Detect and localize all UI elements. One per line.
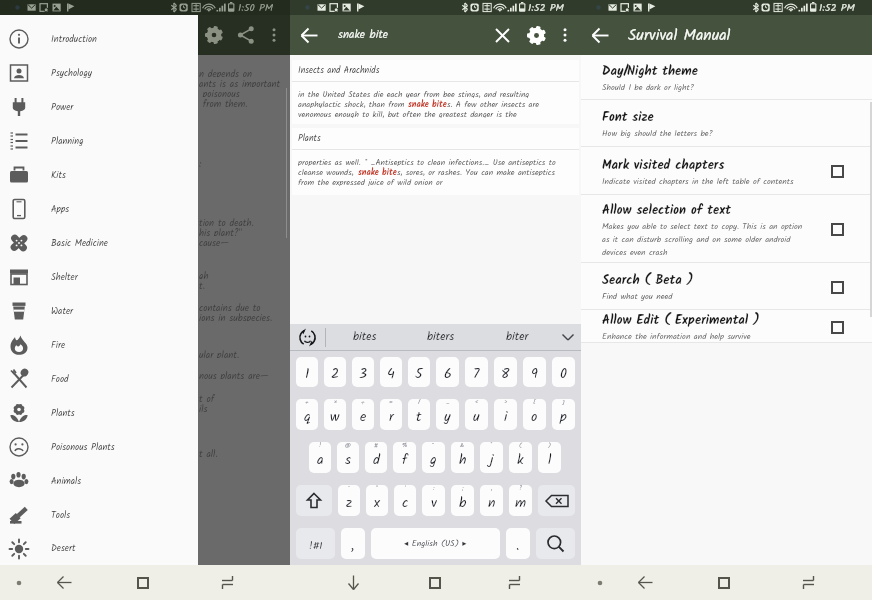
button[interactable]: Clear search: [485, 18, 519, 52]
staticText: q: [304, 406, 311, 428]
staticText: s, sores, or rashes. You can make antise…: [397, 166, 556, 176]
button[interactable]: Menu: [8, 565, 30, 600]
button[interactable]: Day/Night theme: [581, 55, 872, 100]
button[interactable]: Settings: [198, 19, 230, 51]
button[interactable]: Recent apps: [798, 565, 820, 600]
button[interactable]: Search ( Beta ): [581, 263, 872, 310]
button[interactable]: Shelter: [0, 260, 198, 294]
button[interactable]: a: [309, 442, 331, 473]
button[interactable]: Introduction: [0, 22, 198, 56]
button[interactable]: 2: [324, 357, 346, 387]
button[interactable]: Back: [53, 565, 75, 600]
button[interactable]: Back: [581, 16, 619, 54]
button[interactable]: q: [296, 399, 318, 430]
button[interactable]: Allow Edit ( Experimental ): [826, 316, 848, 338]
button[interactable]: Menu: [589, 565, 611, 600]
staticText: d: [373, 449, 380, 471]
button[interactable]: Psychology: [0, 56, 198, 90]
button[interactable]: 9: [523, 357, 546, 387]
button[interactable]: .: [506, 528, 530, 559]
button[interactable]: Search ( Beta ): [826, 276, 848, 298]
button[interactable]: t: [408, 399, 430, 430]
button[interactable]: Tools: [0, 498, 198, 532]
button[interactable]: Recent apps: [504, 565, 526, 600]
button[interactable]: 3: [352, 357, 374, 387]
button[interactable]: Water: [0, 294, 198, 328]
button[interactable]: Allow Edit ( Experimental ): [581, 310, 872, 343]
staticText: e: [360, 406, 367, 428]
button[interactable]: z: [338, 485, 360, 516]
button[interactable]: s: [337, 442, 359, 473]
button[interactable]: Animals: [0, 464, 198, 498]
button[interactable]: h: [451, 442, 474, 473]
button[interactable]: u: [465, 399, 488, 430]
staticText: devices even crash: [602, 246, 668, 259]
button[interactable]: More options: [262, 23, 286, 47]
button[interactable]: n: [480, 485, 503, 516]
button[interactable]: r: [380, 399, 402, 430]
button[interactable]: w: [324, 399, 346, 430]
button[interactable]: d: [365, 442, 387, 473]
button[interactable]: Desert: [0, 532, 198, 565]
button[interactable]: Home: [713, 565, 735, 600]
button[interactable]: ◂ English (US) ▸: [371, 528, 500, 559]
button[interactable]: e: [352, 399, 374, 430]
button[interactable]: biter: [479, 324, 555, 350]
button[interactable]: [538, 485, 575, 516]
button[interactable]: o: [523, 399, 546, 430]
button[interactable]: Share: [230, 19, 262, 51]
button[interactable]: !#1: [296, 528, 335, 559]
button[interactable]: f: [393, 442, 416, 473]
button[interactable]: Mark visited chapters: [826, 160, 848, 182]
button[interactable]: Mark visited chapters: [581, 147, 872, 195]
button[interactable]: More suggestions: [555, 324, 581, 350]
button[interactable]: k: [509, 442, 532, 473]
button[interactable]: Hide keyboard: [342, 565, 364, 600]
button[interactable]: Home: [132, 565, 154, 600]
button[interactable]: g: [422, 442, 445, 473]
staticText: Mark visited chapters: [602, 155, 725, 175]
button[interactable]: 0: [552, 357, 575, 387]
button[interactable]: Fire: [0, 328, 198, 362]
button[interactable]: Kits: [0, 158, 198, 192]
button[interactable]: 1: [296, 357, 318, 387]
button[interactable]: biters: [403, 324, 479, 350]
button[interactable]: Home: [424, 565, 446, 600]
button[interactable]: m: [509, 485, 532, 516]
button[interactable]: 7: [465, 357, 488, 387]
button[interactable]: Poisonous Plants: [0, 430, 198, 464]
button[interactable]: v: [422, 485, 445, 516]
button[interactable]: b: [451, 485, 474, 516]
button[interactable]: ,: [341, 528, 365, 559]
button[interactable]: More options: [553, 23, 577, 47]
button[interactable]: j: [480, 442, 503, 473]
button[interactable]: Font size: [581, 100, 872, 147]
button[interactable]: [296, 485, 332, 516]
button[interactable]: 8: [494, 357, 517, 387]
button[interactable]: Settings: [519, 18, 553, 52]
button[interactable]: y: [436, 399, 459, 430]
button[interactable]: p: [552, 399, 575, 430]
button[interactable]: [536, 528, 575, 559]
button[interactable]: l: [538, 442, 561, 473]
button[interactable]: 4: [380, 357, 402, 387]
button[interactable]: 5: [408, 357, 430, 387]
button[interactable]: Emoji: [290, 324, 325, 350]
button[interactable]: x: [366, 485, 388, 516]
button[interactable]: Planning: [0, 124, 198, 158]
button[interactable]: Power: [0, 90, 198, 124]
button[interactable]: Recent apps: [217, 565, 239, 600]
button[interactable]: Food: [0, 362, 198, 396]
button[interactable]: i: [494, 399, 517, 430]
button[interactable]: bites: [326, 324, 403, 350]
button[interactable]: Plants: [0, 396, 198, 430]
button[interactable]: Basic Medicine: [0, 226, 198, 260]
button[interactable]: Back: [634, 565, 656, 600]
button[interactable]: Apps: [0, 192, 198, 226]
button[interactable]: Allow selection of text: [826, 218, 848, 240]
button[interactable]: Allow selection of text: [581, 195, 872, 263]
staticText: _: [446, 399, 450, 408]
button[interactable]: 6: [436, 357, 459, 387]
button[interactable]: c: [394, 485, 416, 516]
button[interactable]: Back: [290, 16, 328, 54]
